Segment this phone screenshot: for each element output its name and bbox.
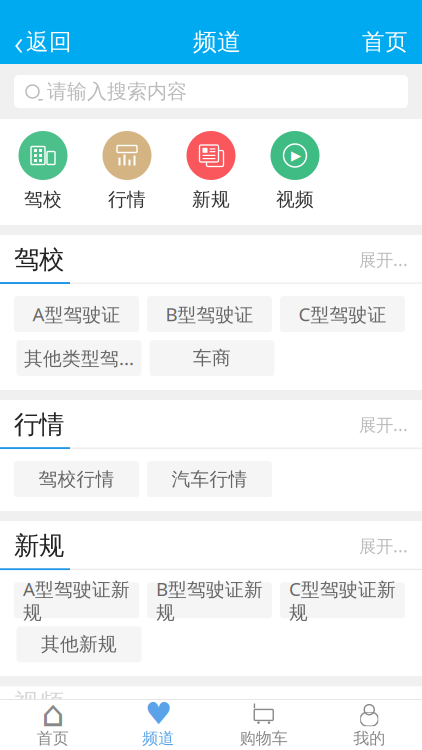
staticText: 车商 xyxy=(193,347,231,369)
staticText: A型驾驶证 xyxy=(32,302,120,326)
staticText: 驾校 xyxy=(14,244,64,275)
staticText: B型驾驶证新规 xyxy=(156,576,263,624)
staticText: 其他类型驾... xyxy=(24,346,134,370)
button[interactable]: A型驾驶证 xyxy=(14,296,139,332)
button[interactable]: 行情 xyxy=(85,131,169,211)
staticText: 行情 xyxy=(14,409,64,440)
staticText: ♥ xyxy=(145,696,172,731)
staticText: 其他新规 xyxy=(41,633,117,656)
staticText: 我的 xyxy=(353,729,385,748)
staticText: 行情 xyxy=(108,188,146,211)
button[interactable]: 我的 xyxy=(316,700,422,750)
button[interactable]: 新规 xyxy=(169,131,253,211)
staticText: A型驾驶证新规 xyxy=(23,576,130,624)
button[interactable]: 展开... xyxy=(359,534,408,557)
button[interactable]: ♥ xyxy=(105,700,211,750)
button[interactable]: 汽车行情 xyxy=(147,461,272,497)
staticText: 展开... xyxy=(359,534,408,557)
staticText: 新规 xyxy=(192,188,230,211)
button[interactable]: ⌂ xyxy=(0,700,105,750)
button[interactable]: 其他类型驾... xyxy=(16,340,141,376)
staticText: C型驾驶证新规 xyxy=(289,576,396,624)
button[interactable]: 展开... xyxy=(359,248,408,271)
staticText: 购物车 xyxy=(240,729,288,748)
button[interactable]: 驾校行情 xyxy=(14,461,139,497)
staticText: 驾校行情 xyxy=(38,468,114,491)
button[interactable]: B型驾驶证 xyxy=(147,296,272,332)
button[interactable]: A型驾驶证新规 xyxy=(14,582,139,618)
staticText: 视频 xyxy=(276,188,314,211)
staticText: ‹ xyxy=(14,19,23,65)
staticText: C型驾驶证 xyxy=(298,302,386,326)
staticText: 展开... xyxy=(359,248,408,271)
staticText: 汽车行情 xyxy=(171,468,247,491)
staticText: 展开... xyxy=(359,413,408,436)
button[interactable]: B型驾驶证新规 xyxy=(147,582,272,618)
button[interactable]: C型驾驶证 xyxy=(280,296,405,332)
button[interactable]: 车商 xyxy=(149,340,274,376)
staticText: 驾校 xyxy=(24,188,62,211)
button[interactable]: ▶ xyxy=(253,131,337,211)
button[interactable]: 其他新规 xyxy=(16,626,141,662)
staticText: 返回 xyxy=(26,28,72,56)
staticText: 首页 xyxy=(37,729,69,748)
staticText: B型驾驶证 xyxy=(165,302,253,326)
staticText: 请输入搜索内容 xyxy=(47,79,187,104)
button[interactable]: 展开... xyxy=(359,413,408,436)
staticText: 新规 xyxy=(14,530,64,561)
button[interactable]: 购物车 xyxy=(211,700,316,750)
staticText: ⌂ xyxy=(41,693,64,734)
button[interactable]: ‹ xyxy=(0,20,86,64)
staticText: 视频 xyxy=(14,688,64,719)
staticText: ▶ xyxy=(291,148,301,163)
button[interactable]: C型驾驶证新规 xyxy=(280,582,405,618)
staticText: 首页 xyxy=(362,28,408,56)
staticText: 频道 xyxy=(142,729,174,748)
button[interactable]: 首页 xyxy=(348,20,422,64)
button[interactable]: 请输入搜索内容 xyxy=(14,75,408,108)
staticText: 频道 xyxy=(193,27,241,57)
button[interactable]: 驾校 xyxy=(1,131,85,211)
